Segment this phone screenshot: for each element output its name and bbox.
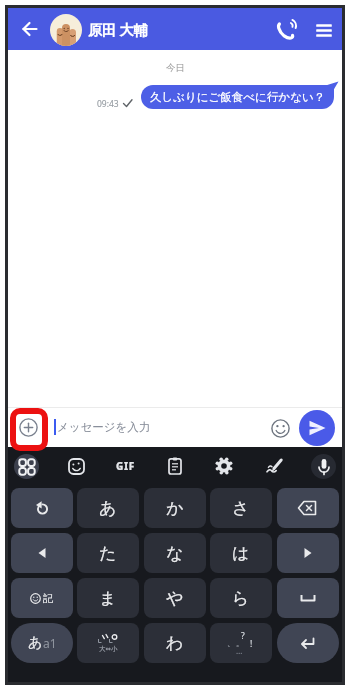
- button[interactable]: や: [144, 578, 206, 618]
- button[interactable]: GIF: [112, 453, 138, 479]
- staticText: 、: [227, 638, 235, 648]
- button[interactable]: ら: [210, 578, 272, 618]
- button[interactable]: 久しぶりにご飯食べに行かない？: [141, 85, 334, 109]
- staticText: a1: [43, 635, 57, 651]
- button[interactable]: [277, 578, 339, 618]
- button[interactable]: は: [210, 533, 272, 573]
- button[interactable]: [50, 14, 82, 46]
- button[interactable]: [311, 454, 336, 479]
- button[interactable]: [277, 623, 339, 663]
- button[interactable]: わ: [144, 623, 206, 663]
- button[interactable]: [11, 533, 73, 573]
- staticText: か: [166, 498, 184, 519]
- staticText: あ: [28, 634, 43, 652]
- button[interactable]: あ: [11, 623, 73, 663]
- button[interactable]: [308, 14, 340, 46]
- button[interactable]: [14, 13, 46, 45]
- button[interactable]: [299, 410, 335, 446]
- staticText: …: [236, 645, 243, 656]
- button[interactable]: 、: [210, 623, 272, 663]
- staticText: ま: [99, 588, 117, 609]
- staticText: や: [166, 588, 184, 609]
- staticText: 記: [43, 592, 54, 605]
- button[interactable]: さ: [210, 488, 272, 528]
- staticText: 原田 大輔: [88, 20, 148, 39]
- staticText: ら: [232, 588, 250, 609]
- staticText: 久しぶりにご飯食べに行かない？: [150, 90, 326, 104]
- button[interactable]: た: [77, 533, 139, 573]
- button[interactable]: [63, 453, 89, 479]
- staticText: な: [166, 543, 184, 564]
- staticText: 09:43: [97, 98, 119, 110]
- button[interactable]: [266, 414, 295, 443]
- staticText: メッセージを入力: [57, 420, 151, 434]
- staticText: わ: [166, 633, 184, 654]
- button[interactable]: [277, 488, 339, 528]
- staticText: た: [99, 543, 117, 564]
- button[interactable]: [261, 453, 287, 479]
- button[interactable]: [211, 453, 237, 479]
- button[interactable]: 大⇔小: [77, 623, 139, 663]
- button[interactable]: ま: [77, 578, 139, 618]
- staticText: は: [232, 543, 250, 564]
- button[interactable]: [162, 453, 188, 479]
- button[interactable]: あ: [77, 488, 139, 528]
- staticText: 。: [236, 638, 244, 648]
- button[interactable]: 記: [11, 578, 73, 618]
- button[interactable]: な: [144, 533, 206, 573]
- button[interactable]: [14, 413, 43, 442]
- button[interactable]: [270, 14, 302, 46]
- staticText: あ: [99, 498, 117, 519]
- staticText: さ: [232, 498, 250, 519]
- button[interactable]: か: [144, 488, 206, 528]
- staticText: !: [250, 638, 253, 650]
- button[interactable]: [11, 488, 73, 528]
- staticText: 大⇔小: [99, 645, 118, 653]
- button[interactable]: [277, 533, 339, 573]
- staticText: ?: [241, 630, 245, 642]
- staticText: GIF: [116, 459, 135, 473]
- button[interactable]: [14, 454, 39, 479]
- staticText: 今日: [166, 62, 185, 74]
